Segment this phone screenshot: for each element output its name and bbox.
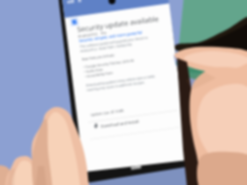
button[interactable]: Phone showing a security update dialog xyxy=(0,0,247,185)
